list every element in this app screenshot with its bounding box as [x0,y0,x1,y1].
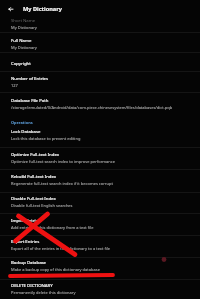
staticText: Export Entries [11,238,40,244]
staticText: My Dictionary [11,45,37,50]
staticText: My Dictionary [11,25,37,30]
staticText: /storage/emulated/0/Android/data/com.pie… [11,105,173,110]
button[interactable]: Import Entries [0,216,200,235]
staticText: My Dictionary [23,5,62,13]
staticText: DELETE DICTIONARY [11,282,53,288]
button[interactable]: Optimize Full-text Index [0,150,200,169]
button[interactable]: Rebuild Full-text Index [0,172,200,192]
button[interactable]: Back [2,0,20,18]
staticText: Disable Full-text Index [11,195,56,201]
staticText: Rebuild Full-text Index [11,173,57,179]
staticText: Regenerate full-text search index if it … [11,181,113,186]
staticText: Short Name [11,17,36,23]
staticText: Permanently delete this dictionary [11,290,76,295]
staticText: 127 [11,83,18,88]
button[interactable]: DELETE DICTIONARY [0,281,200,299]
staticText: Backup Database [11,259,47,265]
staticText: Database File Path [11,97,49,103]
staticText: Disable full-text English searches [11,203,73,208]
button[interactable]: Short Name [0,17,200,32]
staticText: Full Name [11,37,32,43]
staticText: Operations [11,120,33,125]
staticText: Lock Database [11,128,41,134]
staticText: Export all of the entries in this dictio… [11,246,111,251]
staticText: Lock this database to prevent editing [11,136,81,141]
button[interactable]: Copyright [0,53,200,71]
button[interactable]: Backup Database [0,258,200,278]
button[interactable]: Lock Database [0,127,200,147]
staticText: Copyright [11,60,31,66]
staticText: Import Entries [11,217,41,223]
button[interactable]: Database File Path [0,96,200,118]
staticText: Optimize full-text search index to impro… [11,159,115,164]
button[interactable]: Number of Entries [0,74,200,92]
staticText: Optimize Full-text Index [11,151,60,157]
staticText: Add entries to this dictionary from a te… [11,225,94,230]
button[interactable]: Export Entries [0,237,200,257]
button[interactable]: Full Name [0,36,200,52]
staticText: Number of Entries [11,75,49,81]
button[interactable]: Disable Full-text Index [0,194,200,214]
staticText: Make a backup copy of this dictionary da… [11,267,100,272]
